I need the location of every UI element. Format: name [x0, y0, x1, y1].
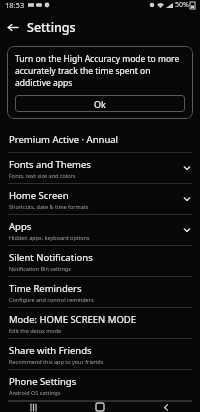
- button[interactable]: Time Reminders: [0, 277, 200, 307]
- staticText: 18:53: [5, 0, 25, 10]
- button[interactable]: Apps: [0, 215, 200, 245]
- staticText: Edit the detox mode: [9, 327, 62, 334]
- button[interactable]: Silent Notifications: [0, 246, 200, 276]
- staticText: Configure and control reminders: [9, 296, 94, 303]
- staticText: Hidden apps, keyboard options: [9, 234, 90, 241]
- button[interactable]: Fonts and Themes: [0, 153, 200, 183]
- button[interactable]: Recents: [0, 402, 66, 412]
- staticText: 50%: [175, 0, 189, 10]
- staticText: Ok: [94, 98, 106, 110]
- button[interactable]: Mode: HOME SCREEN MODE: [0, 308, 200, 338]
- staticText: Turn on the High Accuracy mode to more a…: [15, 53, 185, 89]
- staticText: Premium Active · Annual: [9, 133, 119, 146]
- staticText: Recommend this app to your friends: [9, 358, 104, 365]
- staticText: Notification Bin settings: [9, 265, 71, 272]
- staticText: Share with Friends: [9, 344, 92, 357]
- button[interactable]: Phone Settings: [0, 370, 200, 400]
- staticText: Mode: HOME SCREEN MODE: [9, 313, 137, 326]
- staticText: Phone Settings: [9, 375, 77, 388]
- button[interactable]: Home: [66, 402, 133, 412]
- button[interactable]: Premium Active · Annual: [0, 127, 200, 152]
- staticText: Settings: [27, 19, 76, 36]
- staticText: Shortcuts, date & time formats: [9, 203, 89, 210]
- button[interactable]: Share with Friends: [0, 339, 200, 369]
- staticText: Home Screen: [9, 189, 69, 202]
- staticText: Apps: [9, 220, 32, 233]
- button[interactable]: Back: [0, 15, 24, 39]
- staticText: Android OS settings: [9, 389, 61, 396]
- staticText: Silent Notifications: [9, 251, 93, 264]
- staticText: Fonts, text size and colors: [9, 172, 76, 179]
- button[interactable]: Home Screen: [0, 184, 200, 214]
- button[interactable]: Ok: [15, 95, 185, 112]
- button[interactable]: Back: [133, 402, 200, 412]
- staticText: Time Reminders: [9, 282, 82, 295]
- staticText: Fonts and Themes: [9, 158, 91, 171]
